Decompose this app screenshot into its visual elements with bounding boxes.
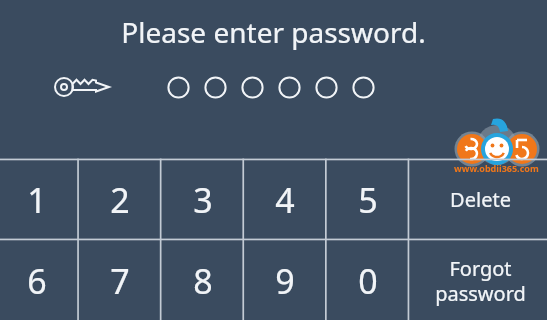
button[interactable]: 3 [161, 160, 244, 239]
staticText: Please enter password. [121, 13, 426, 51]
staticText: 6 [27, 258, 47, 304]
staticText: Delete [450, 186, 511, 213]
staticText: 4 [275, 177, 295, 223]
button[interactable]: 6 [0, 240, 78, 320]
staticText: www.obdii365.com [454, 162, 539, 174]
button[interactable]: 7 [78, 240, 161, 320]
button[interactable]: 0 [326, 240, 409, 320]
staticText: 3 [193, 177, 213, 223]
staticText: 5 [358, 177, 378, 223]
staticText: 2 [110, 177, 130, 223]
button[interactable]: 5 [326, 160, 409, 239]
button[interactable]: Forgot password [409, 240, 547, 320]
button[interactable]: 1 [0, 160, 78, 239]
button[interactable]: 8 [161, 240, 244, 320]
staticText: 9 [275, 258, 295, 304]
staticText: 0 [358, 258, 378, 304]
button[interactable]: 9 [243, 240, 326, 320]
button[interactable]: 2 [78, 160, 161, 239]
button[interactable]: Delete [409, 160, 547, 239]
other: Password [53, 73, 111, 101]
staticText: Forgot password [435, 255, 526, 307]
button[interactable]: 4 [243, 160, 326, 239]
staticText: 7 [110, 258, 130, 304]
staticText: 8 [193, 258, 213, 304]
staticText: 1 [27, 177, 47, 223]
